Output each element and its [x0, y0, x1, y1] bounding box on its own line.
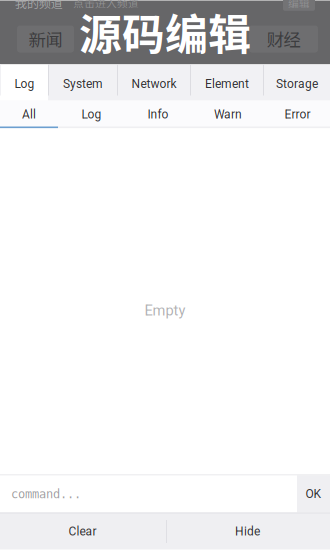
staticText: Network: [131, 77, 176, 91]
staticText: Error: [284, 107, 310, 122]
button[interactable]: Storage: [263, 64, 330, 100]
button[interactable]: Warn: [191, 100, 265, 126]
staticText: 编辑: [288, 0, 310, 10]
staticText: Empty: [144, 302, 185, 319]
staticText: 我的频道: [15, 0, 63, 11]
button[interactable]: Info: [125, 100, 191, 126]
button[interactable]: Clear: [0, 513, 165, 549]
button[interactable]: Error: [265, 100, 330, 126]
button[interactable]: All: [0, 100, 58, 126]
button[interactable]: Element: [190, 64, 263, 100]
button[interactable]: Log: [58, 100, 125, 126]
button[interactable]: OK: [297, 475, 330, 512]
staticText: 源码编辑: [79, 1, 251, 62]
button[interactable]: command...: [0, 475, 297, 512]
button[interactable]: System: [48, 64, 117, 100]
staticText: Storage: [276, 77, 318, 91]
staticText: Log: [14, 77, 34, 91]
staticText: Log: [81, 107, 101, 122]
button[interactable]: Hide: [165, 513, 330, 549]
staticText: OK: [305, 487, 321, 501]
staticText: Element: [205, 77, 249, 91]
staticText: Hide: [235, 524, 260, 539]
staticText: All: [22, 107, 36, 122]
staticText: 新闻: [28, 26, 62, 52]
staticText: Info: [147, 107, 168, 122]
staticText: 财经: [266, 26, 300, 52]
staticText: command...: [11, 487, 81, 501]
button[interactable]: Log: [0, 64, 48, 100]
button[interactable]: Network: [117, 64, 190, 100]
staticText: System: [63, 77, 103, 91]
staticText: 点击进入频道: [73, 0, 139, 10]
staticText: Clear: [68, 524, 96, 539]
staticText: Warn: [214, 107, 242, 122]
